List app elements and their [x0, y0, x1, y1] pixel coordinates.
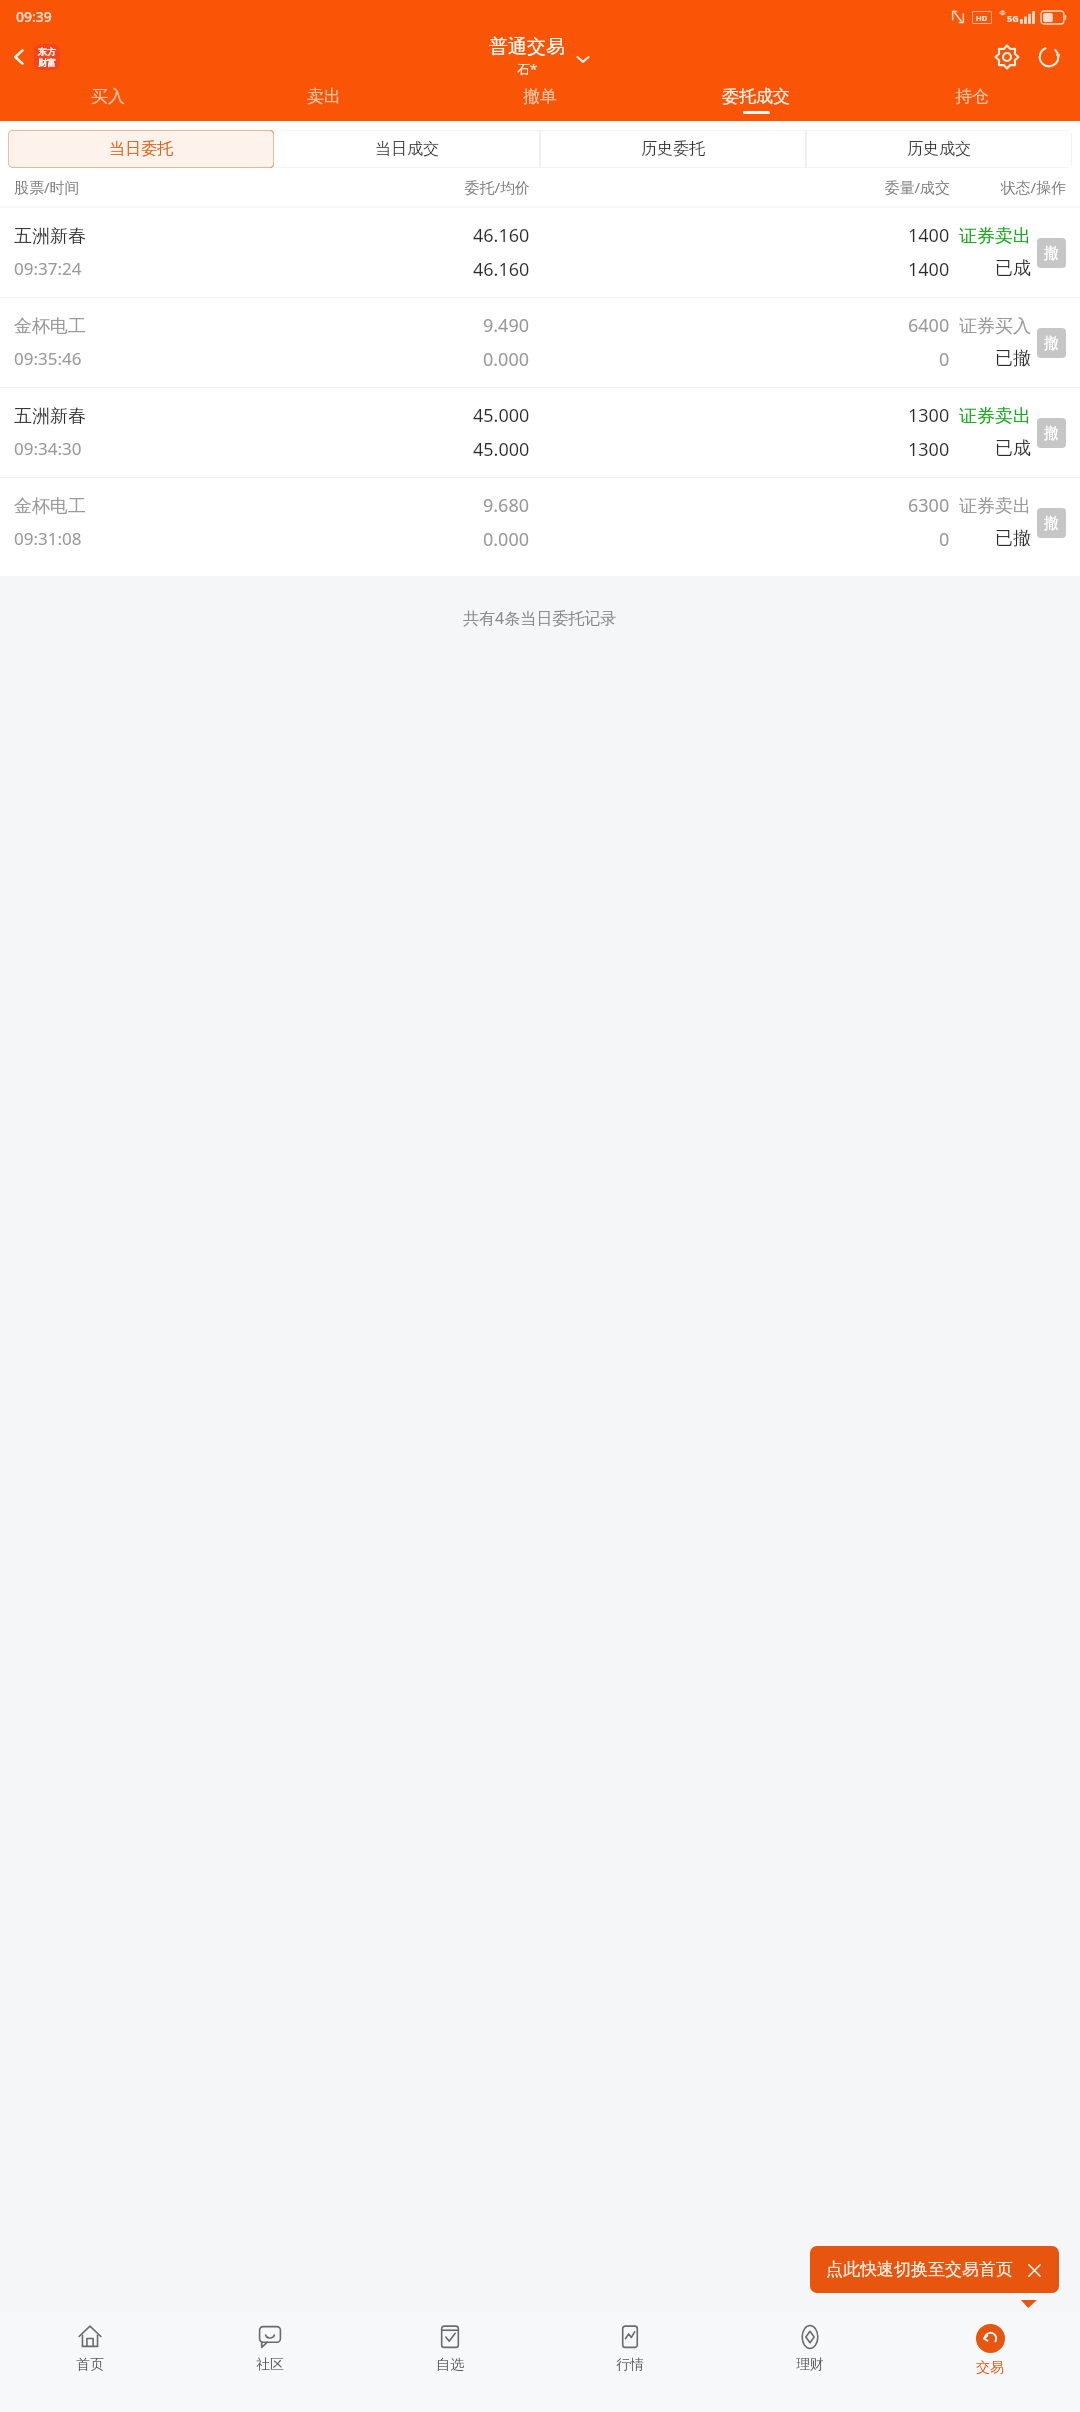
staticText: 交易 — [976, 2359, 1004, 2377]
button[interactable]: 五洲新春 — [0, 388, 1080, 477]
button[interactable]: 买入 — [0, 80, 216, 120]
button[interactable]: 当日委托 — [8, 130, 274, 168]
staticText: 6300 — [908, 493, 950, 518]
button[interactable]: 撤 — [1037, 418, 1066, 448]
staticText: 已成 — [995, 437, 1031, 460]
staticText: 买入 — [91, 86, 125, 107]
staticText: 撤 — [1044, 244, 1059, 263]
button[interactable]: 点此快速切换至交易首页 — [810, 2246, 1059, 2293]
staticText: 证券卖出 — [959, 225, 1031, 248]
staticText: 已撤 — [995, 347, 1031, 370]
staticText: 撤单 — [523, 86, 557, 107]
button[interactable]: 五洲新春 — [0, 208, 1080, 297]
button[interactable]: 交易 — [900, 2320, 1080, 2381]
staticText: 当日成交 — [375, 139, 439, 159]
button[interactable]: 行情 — [540, 2320, 720, 2378]
button[interactable]: 理财 — [720, 2320, 900, 2378]
staticText: 0 — [939, 347, 950, 372]
button[interactable]: 自选 — [360, 2320, 540, 2378]
staticText: 石* — [517, 60, 538, 78]
staticText: 6400 — [908, 313, 950, 338]
staticText: 09:35:46 — [14, 347, 82, 370]
button[interactable]: 撤 — [1037, 508, 1066, 538]
button[interactable]: 历史成交 — [806, 130, 1072, 168]
staticText: 45.000 — [473, 437, 530, 462]
staticText: 自选 — [436, 2356, 464, 2374]
staticText: 股票/时间 — [14, 177, 110, 197]
staticText: 当日委托 — [109, 139, 173, 159]
staticText: 0.000 — [483, 527, 530, 552]
staticText: 撤 — [1044, 514, 1059, 533]
staticText: 46.160 — [473, 257, 530, 282]
button[interactable]: 首页 — [0, 2320, 180, 2378]
staticText: 46.160 — [473, 223, 530, 248]
staticText: 持仓 — [955, 86, 989, 107]
button[interactable]: 历史委托 — [540, 130, 806, 168]
staticText: 社区 — [256, 2356, 284, 2374]
staticText: 委托/均价 — [110, 177, 530, 197]
staticText: 东方 — [38, 46, 56, 57]
staticText: 点此快速切换至交易首页 — [826, 2259, 1013, 2280]
staticText: 已成 — [995, 257, 1031, 280]
staticText: 0 — [939, 527, 950, 552]
button[interactable]: Refresh — [1032, 40, 1066, 74]
button[interactable]: 撤单 — [432, 80, 648, 120]
staticText: 1300 — [908, 437, 950, 462]
staticText: 已撤 — [995, 527, 1031, 550]
staticText: 首页 — [76, 2356, 104, 2374]
button[interactable]: Back — [4, 44, 64, 70]
staticText: 5G — [1007, 12, 1019, 24]
button[interactable]: 委托成交 — [648, 80, 864, 120]
staticText: 1400 — [908, 223, 950, 248]
staticText: 09:31:08 — [14, 527, 82, 550]
staticText: 历史成交 — [907, 139, 971, 159]
staticText: 9.680 — [483, 493, 530, 518]
staticText: 委量/成交 — [530, 177, 950, 197]
staticText: 撤 — [1044, 334, 1059, 353]
button[interactable]: 当日成交 — [274, 130, 540, 168]
staticText: 09:39 — [16, 7, 52, 26]
staticText: 委托成交 — [722, 86, 790, 107]
staticText: 五洲新春 — [14, 225, 86, 248]
staticText: 1300 — [908, 403, 950, 428]
staticText: 证券买入 — [959, 315, 1031, 338]
staticText: 证券卖出 — [959, 405, 1031, 428]
staticText: 历史委托 — [641, 139, 705, 159]
staticText: 9.490 — [483, 313, 530, 338]
staticText: 财富 — [38, 57, 56, 68]
staticText: 1400 — [908, 257, 950, 282]
staticText: 09:37:24 — [14, 257, 82, 280]
staticText: HD — [976, 13, 988, 23]
staticText: 理财 — [796, 2356, 824, 2374]
button[interactable]: 普通交易 — [489, 35, 591, 78]
staticText: 证券卖出 — [959, 495, 1031, 518]
button[interactable]: 金杯电工 — [0, 298, 1080, 387]
staticText: 金杯电工 — [14, 315, 86, 338]
button[interactable]: 金杯电工 — [0, 478, 1080, 567]
staticText: 五洲新春 — [14, 405, 86, 428]
button[interactable]: 撤 — [1037, 238, 1066, 268]
button[interactable]: 卖出 — [216, 80, 432, 120]
button[interactable]: Settings — [990, 40, 1024, 74]
staticText: 普通交易 — [489, 35, 565, 59]
staticText: 45.000 — [473, 403, 530, 428]
staticText: 卖出 — [307, 86, 341, 107]
staticText: 金杯电工 — [14, 495, 86, 518]
other: Close — [1025, 2261, 1043, 2279]
staticText: 状态/操作 — [950, 177, 1066, 197]
staticText: 09:34:30 — [14, 437, 82, 460]
button[interactable]: 持仓 — [864, 80, 1080, 120]
button[interactable]: 社区 — [180, 2320, 360, 2378]
staticText: 共有4条当日委托记录 — [463, 607, 617, 629]
staticText: 撤 — [1044, 424, 1059, 443]
staticText: 行情 — [616, 2356, 644, 2374]
button[interactable]: 撤 — [1037, 328, 1066, 358]
staticText: 0.000 — [483, 347, 530, 372]
